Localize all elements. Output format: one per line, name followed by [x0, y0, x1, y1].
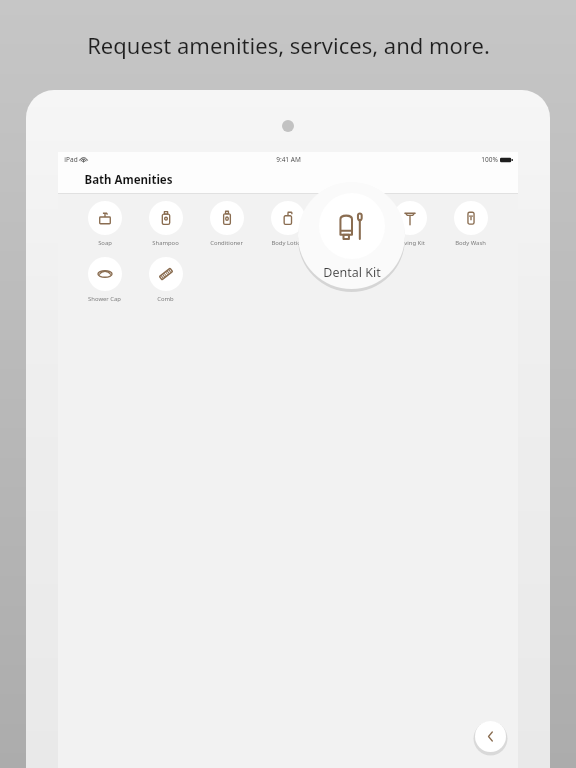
button[interactable]: Dental Kit	[298, 182, 405, 289]
button[interactable]: Dental Kit	[318, 201, 379, 247]
button[interactable]: Body Lotion	[257, 201, 318, 247]
staticText: Soap	[98, 239, 112, 247]
staticText: Dental Kit	[335, 239, 363, 247]
button[interactable]: Shaving Kit	[379, 201, 440, 247]
button[interactable]: Shampoo	[135, 201, 196, 247]
button[interactable]: Back	[475, 721, 506, 752]
staticText: Dental Kit	[323, 264, 381, 281]
staticText: Bath Amenities	[84, 172, 173, 188]
staticText: iPad	[64, 155, 78, 164]
staticText: Shaving Kit	[394, 239, 425, 247]
button[interactable]: Conditioner	[196, 201, 257, 247]
button[interactable]: Body Wash	[440, 201, 501, 247]
button[interactable]: Soap	[74, 201, 135, 247]
staticText: Conditioner	[210, 239, 243, 247]
staticText: Body Wash	[455, 239, 486, 247]
staticText: Comb	[157, 295, 174, 303]
staticText: 9:41 AM	[276, 155, 301, 164]
button[interactable]: Comb	[135, 257, 196, 303]
staticText: Shower Cap	[88, 295, 121, 303]
staticText: Shampoo	[152, 239, 179, 247]
staticText: Request amenities, services, and more.	[87, 30, 490, 60]
button[interactable]: Shower Cap	[74, 257, 135, 303]
staticText: 100%	[481, 155, 498, 164]
staticText: Body Lotion	[271, 239, 305, 247]
